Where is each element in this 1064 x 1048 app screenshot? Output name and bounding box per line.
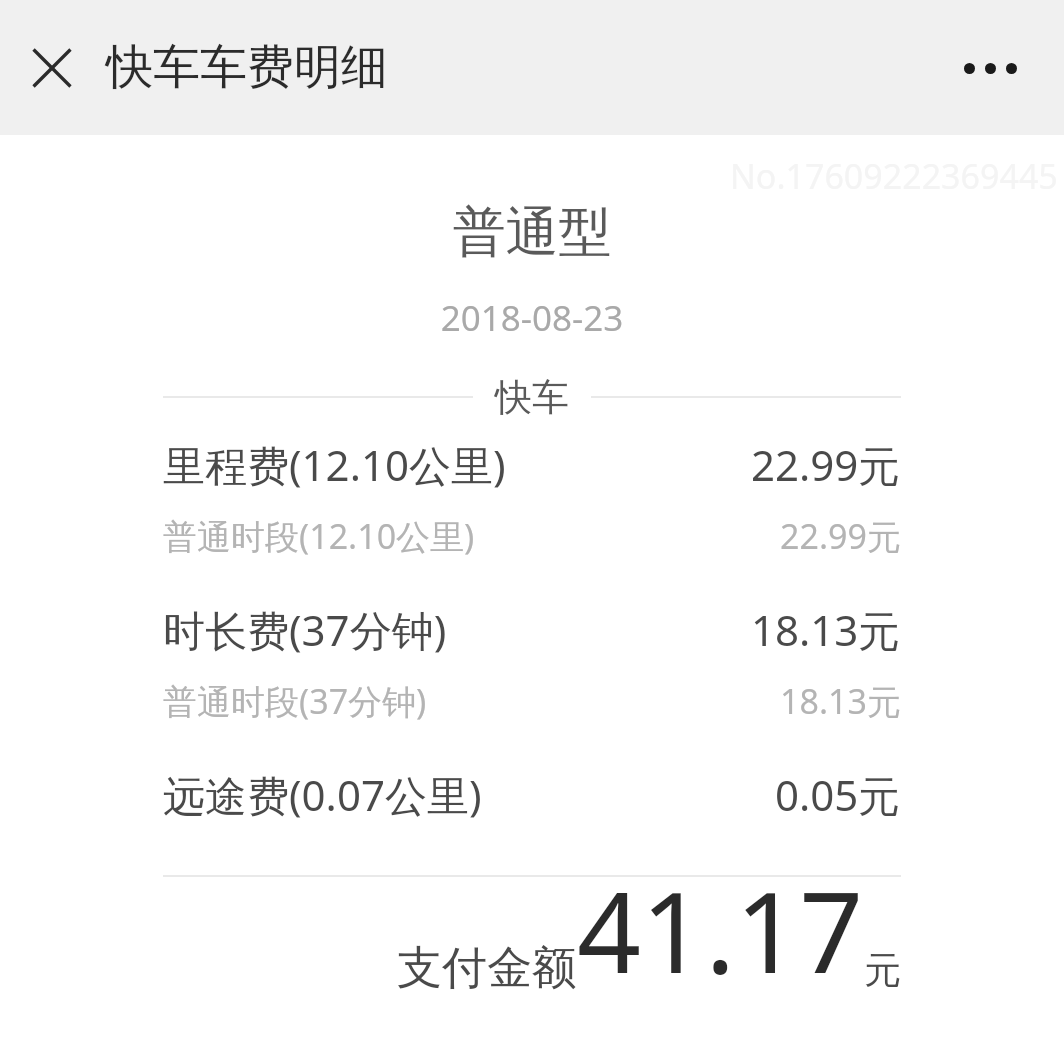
staticText: 18.13元 bbox=[751, 601, 901, 658]
staticText: 22.99元 bbox=[751, 436, 901, 493]
button[interactable]: 时长费(37分钟) bbox=[163, 601, 901, 658]
staticText: 2018-08-23 bbox=[0, 294, 1064, 342]
staticText: 18.13元 bbox=[780, 678, 901, 724]
staticText: 快车车费明细 bbox=[106, 38, 388, 97]
button[interactable]: More options bbox=[948, 32, 1032, 104]
staticText: No.17609222369445 bbox=[730, 153, 1058, 199]
staticText: 元 bbox=[864, 947, 901, 994]
staticText: 普通时段(37分钟) bbox=[163, 678, 427, 724]
staticText: 里程费(12.10公里) bbox=[163, 436, 506, 493]
button[interactable]: 支付金额 bbox=[397, 853, 901, 1006]
staticText: 41.17 bbox=[577, 853, 864, 1006]
staticText: 快车 bbox=[495, 374, 569, 421]
button[interactable]: 普通时段(12.10公里) bbox=[163, 513, 901, 559]
staticText: 支付金额 bbox=[397, 940, 577, 997]
staticText: 远途费(0.07公里) bbox=[163, 766, 482, 823]
staticText: 22.99元 bbox=[780, 513, 901, 559]
staticText: 普通型 bbox=[0, 199, 1064, 266]
staticText: 普通时段(12.10公里) bbox=[163, 513, 475, 559]
button[interactable]: 远途费(0.07公里) bbox=[163, 766, 901, 823]
staticText: 0.05元 bbox=[775, 766, 901, 823]
button[interactable]: Close bbox=[20, 36, 84, 100]
button[interactable]: 里程费(12.10公里) bbox=[163, 436, 901, 493]
staticText: 时长费(37分钟) bbox=[163, 601, 447, 658]
button[interactable]: 普通时段(37分钟) bbox=[163, 678, 901, 724]
